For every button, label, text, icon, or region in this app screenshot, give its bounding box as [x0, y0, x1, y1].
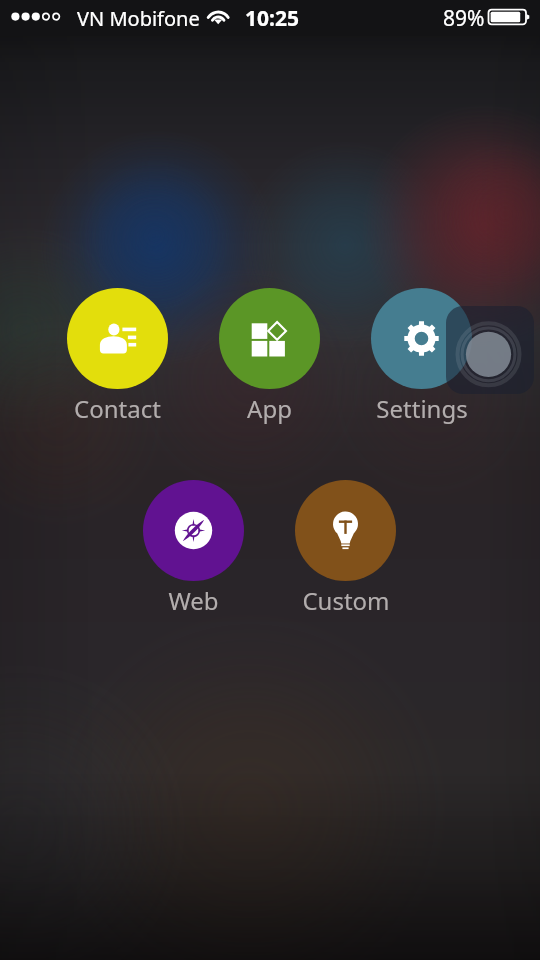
button[interactable]: AssistiveTouch: [446, 306, 534, 394]
button[interactable]: Settings: [371, 288, 472, 389]
staticText: Settings: [376, 392, 468, 425]
staticText: Web: [168, 584, 219, 617]
button[interactable]: Custom: [295, 480, 396, 581]
staticText: VN Mobifone: [77, 5, 200, 32]
staticText: 10:25: [245, 4, 299, 33]
staticText: 89%: [443, 4, 485, 33]
staticText: Custom: [302, 584, 390, 617]
button[interactable]: Web: [143, 480, 244, 581]
staticText: App: [247, 392, 292, 425]
button[interactable]: App: [219, 288, 320, 389]
staticText: Contact: [74, 392, 161, 425]
button[interactable]: Contact: [67, 288, 168, 389]
